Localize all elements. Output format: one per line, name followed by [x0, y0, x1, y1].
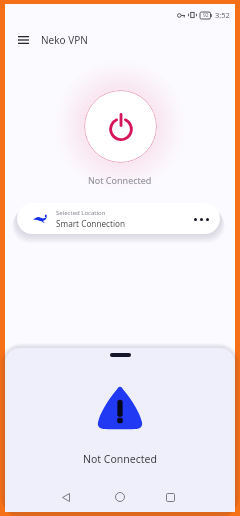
button[interactable]: Recent apps: [157, 484, 183, 510]
staticText: Selected Location: [56, 209, 106, 217]
staticText: Not Connected: [88, 174, 152, 186]
button[interactable]: More options: [190, 208, 212, 230]
button[interactable]: Open navigation menu: [11, 28, 35, 52]
staticText: Smart Connection: [56, 218, 126, 229]
staticText: Neko VPN: [41, 33, 88, 47]
button[interactable]: Connect VPN: [84, 90, 157, 163]
staticText: 3:52: [215, 10, 230, 20]
staticText: Not Connected: [83, 452, 157, 466]
button[interactable]: Selected Location: [17, 203, 220, 234]
button[interactable]: Back: [53, 484, 79, 510]
staticText: 92: [203, 12, 209, 19]
button[interactable]: Home: [107, 484, 133, 510]
